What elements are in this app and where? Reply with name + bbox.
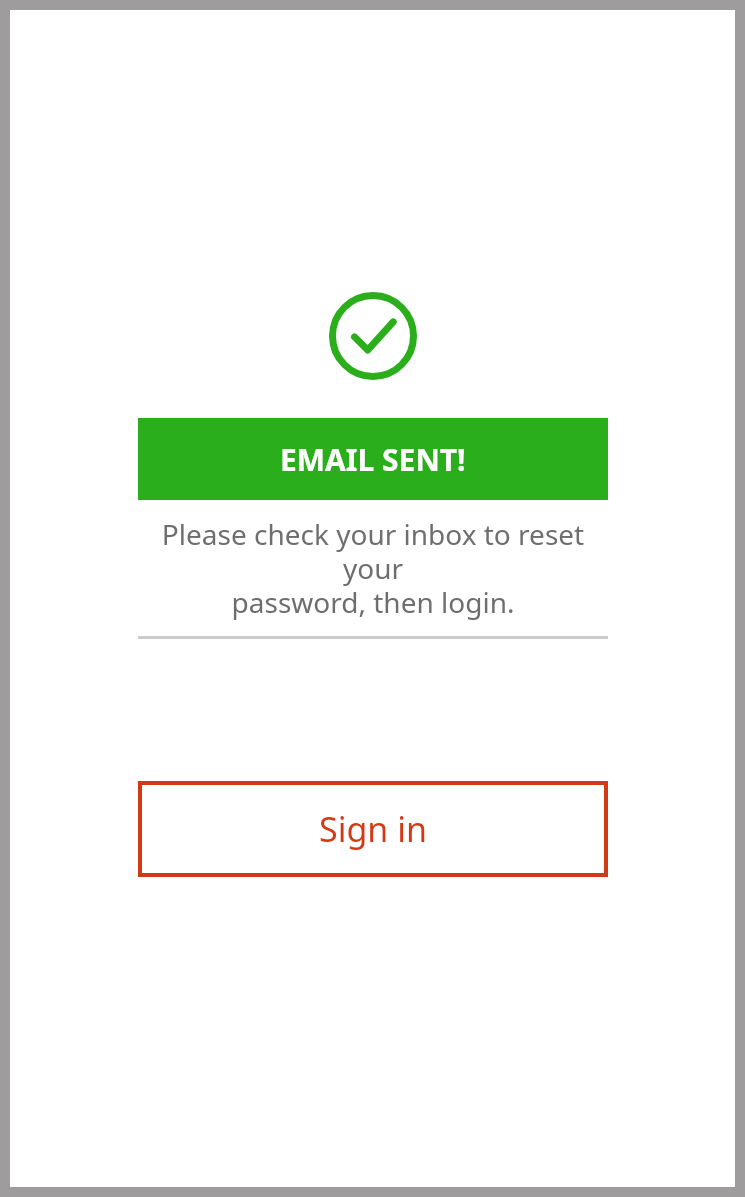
other: Success	[329, 292, 417, 380]
button[interactable]: Sign in	[138, 781, 608, 877]
staticText: Please check your inbox to reset your pa…	[138, 515, 608, 621]
staticText: Sign in	[319, 806, 427, 852]
staticText: EMAIL SENT!	[280, 439, 466, 480]
